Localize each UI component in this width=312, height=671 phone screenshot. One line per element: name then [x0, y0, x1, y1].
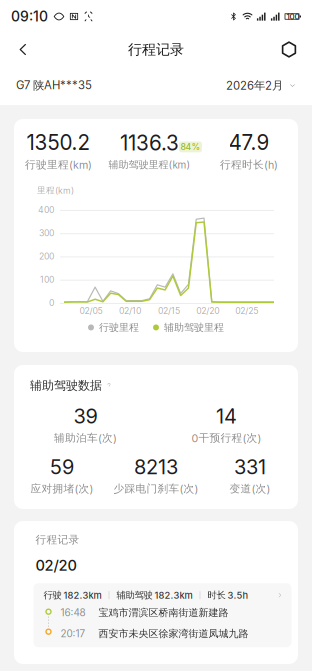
staticText: 辅助驾驶里程(km) — [108, 158, 190, 171]
staticText: 行驶里程(km) — [25, 158, 92, 171]
staticText: 14 — [216, 404, 237, 428]
staticText: 里程(km) — [37, 185, 74, 196]
staticText: 02/20 — [196, 306, 219, 316]
staticText: 0 — [49, 298, 54, 308]
staticText: 少踩电门刹车(次) — [113, 482, 198, 495]
staticText: 84% — [180, 142, 200, 152]
staticText: 行驶 182.3km — [43, 589, 101, 601]
staticText: 辅助驾驶里程 — [164, 321, 224, 334]
staticText: 59 — [50, 455, 74, 479]
staticText: 47.9 — [228, 130, 269, 155]
staticText: 宝鸡市渭滨区桥南街道新建路 — [98, 606, 228, 619]
staticText: 16:48 — [60, 607, 85, 619]
staticText: 400 — [38, 205, 54, 215]
staticText: 02/25 — [235, 306, 258, 316]
button[interactable]: 设置 — [266, 33, 312, 66]
staticText: 0干预行程(次) — [191, 431, 261, 445]
staticText: 331 — [234, 455, 266, 479]
staticText: 2026年2月 — [226, 78, 283, 93]
staticText: 100 — [286, 12, 299, 21]
button[interactable]: 2026年2月 — [216, 66, 312, 105]
staticText: 行程记录 — [128, 41, 184, 58]
button[interactable]: G7 陕AH***35 — [0, 66, 102, 105]
staticText: 行驶里程 — [99, 321, 139, 334]
staticText: 1136.3 — [120, 130, 179, 155]
staticText: G7 陕AH***35 — [16, 78, 92, 93]
staticText: 02/20 — [35, 556, 76, 574]
staticText: 20:17 — [60, 628, 85, 640]
staticText: 02/15 — [158, 306, 180, 316]
button[interactable]: 返回 — [0, 33, 46, 66]
staticText: 应对拥堵(次) — [30, 482, 93, 495]
staticText: 02/10 — [119, 306, 141, 316]
staticText: 300 — [39, 228, 54, 238]
staticText: 200 — [39, 251, 54, 262]
staticText: 1350.2 — [26, 130, 90, 155]
staticText: 辅助驾驶数据 — [30, 378, 102, 393]
staticText: 辅助驾驶 182.3km — [116, 589, 192, 601]
staticText: 100 — [40, 274, 54, 285]
staticText: 09:10 — [11, 8, 48, 25]
staticText: 时长 3.5h — [207, 589, 248, 601]
staticText: 39 — [73, 404, 97, 428]
staticText: 8213 — [134, 455, 178, 479]
staticText: 02/05 — [80, 306, 103, 316]
staticText: 行程时长(h) — [220, 158, 278, 171]
button[interactable]: 行驶 182.3km — [33, 583, 291, 647]
staticText: 变道(次) — [229, 482, 270, 495]
staticText: 辅助泊车(次) — [54, 431, 117, 445]
staticText: 行程记录 — [35, 533, 79, 546]
staticText: 西安市未央区徐家湾街道凤城九路 — [98, 627, 248, 640]
